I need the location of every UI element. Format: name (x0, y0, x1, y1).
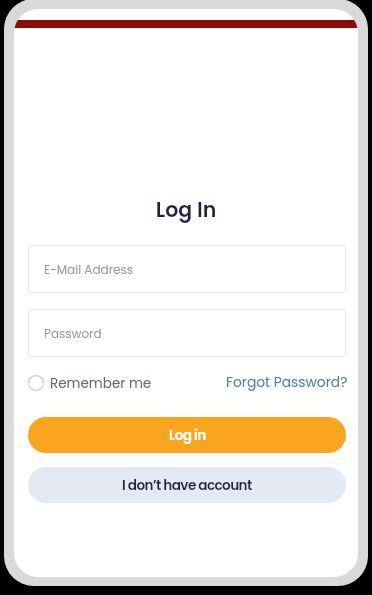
button[interactable]: Remember me (28, 373, 152, 392)
staticText: E-Mail Address (44, 261, 134, 278)
button[interactable]: Forgot Password? (226, 373, 348, 392)
button[interactable]: Log in (28, 417, 346, 453)
staticText: Log in (169, 426, 206, 445)
button[interactable]: Password (28, 309, 346, 357)
staticText: I don’t have account (122, 476, 252, 495)
staticText: Log In (14, 195, 358, 224)
staticText: Remember me (50, 374, 152, 393)
button[interactable]: I don’t have account (28, 467, 346, 503)
staticText: Password (44, 325, 102, 342)
button[interactable]: E-Mail Address (28, 245, 346, 293)
